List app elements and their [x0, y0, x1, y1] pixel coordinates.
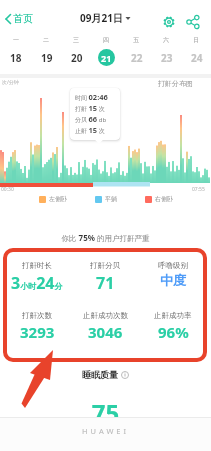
- staticText: 首页: [13, 12, 33, 25]
- button[interactable]: 首页: [4, 12, 33, 25]
- staticText: 止鼾 15 次: [75, 125, 105, 136]
- button[interactable]: 睡眠质量: [0, 369, 211, 380]
- staticText: 时间 02:46: [75, 92, 108, 103]
- staticText: HUAWEI: [0, 426, 211, 436]
- staticText: 71: [96, 272, 115, 294]
- button[interactable]: [162, 15, 176, 29]
- staticText: 24: [191, 51, 203, 65]
- staticText: 一: [13, 36, 19, 44]
- staticText: 次/分钟: [2, 79, 19, 86]
- staticText: 3293: [20, 322, 55, 342]
- staticText: 右侧卧: [155, 195, 173, 203]
- staticText: 打鼾次数: [22, 311, 52, 320]
- staticText: 18: [10, 51, 22, 65]
- staticText: 21: [101, 52, 112, 64]
- button[interactable]: 09月21日: [80, 11, 131, 25]
- staticText: 平躺: [105, 195, 117, 203]
- staticText: 打鼾分贝: [90, 261, 120, 270]
- staticText: 二: [43, 36, 49, 44]
- staticText: 00:30: [1, 186, 14, 193]
- button[interactable]: 三: [61, 36, 91, 66]
- button[interactable]: 四: [91, 36, 121, 66]
- staticText: 20: [71, 51, 83, 65]
- staticText: 3小时24分: [11, 272, 63, 294]
- staticText: 3046: [88, 322, 123, 342]
- staticText: 中度: [160, 272, 186, 288]
- staticText: 22: [131, 51, 143, 65]
- staticText: 六: [163, 36, 169, 44]
- button[interactable]: [186, 15, 200, 29]
- staticText: 呼噜级别: [158, 261, 188, 270]
- button[interactable]: 日: [181, 36, 211, 66]
- staticText: 止鼾成功次数: [83, 311, 128, 320]
- staticText: 打鼾分布图: [158, 79, 193, 88]
- staticText: 你比 75% 的用户打鼾严重: [0, 232, 211, 243]
- staticText: 打鼾 15 次: [75, 103, 105, 114]
- button[interactable]: 六: [151, 36, 181, 66]
- staticText: 左侧卧: [49, 195, 67, 203]
- staticText: 五: [133, 36, 139, 44]
- button[interactable]: 二: [31, 36, 61, 66]
- staticText: 打鼾时长: [22, 261, 52, 270]
- staticText: 三: [73, 36, 79, 44]
- staticText: 09月21日: [80, 11, 123, 25]
- button[interactable]: 一: [0, 36, 31, 66]
- staticText: 19: [41, 51, 53, 65]
- button[interactable]: 五: [121, 36, 151, 66]
- staticText: 07:55: [192, 186, 205, 193]
- staticText: 睡眠质量: [82, 369, 118, 380]
- staticText: 分贝 66 db: [75, 114, 107, 125]
- staticText: 日: [193, 36, 199, 44]
- staticText: 四: [103, 36, 109, 44]
- staticText: 23: [161, 51, 173, 65]
- staticText: 止鼾成功率: [154, 311, 192, 320]
- staticText: 75: [0, 396, 211, 429]
- staticText: 96%: [158, 322, 189, 342]
